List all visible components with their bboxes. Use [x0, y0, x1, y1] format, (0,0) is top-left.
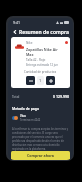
button[interactable]: Comprar ahora: [11, 151, 70, 160]
staticText: Zapatillas Nike Air Max: [26, 47, 65, 57]
staticText: Al confirmar tu compra aceptas los termi…: [12, 127, 69, 151]
staticText: Nike: [26, 41, 33, 45]
staticText: Entrega estimada 12 jun: [26, 63, 58, 67]
staticText: Total: [12, 95, 20, 99]
button[interactable]: Decrease quantity: [26, 76, 35, 85]
staticText: Comprar ahora: [27, 153, 54, 158]
button[interactable]: Remove: [65, 41, 68, 44]
staticText: Resumen de compra: [19, 29, 69, 36]
staticText: 1: [39, 78, 42, 83]
staticText: Visa: [20, 114, 26, 118]
button[interactable]: Back: [11, 28, 19, 36]
staticText: 9:41: [13, 20, 20, 25]
staticText: Termina en 4242: [20, 118, 41, 122]
staticText: Talla 42 - Rojo: [26, 58, 46, 62]
button[interactable]: Increase quantity: [46, 76, 55, 85]
staticText: Cantidad de productos: [24, 70, 57, 74]
staticText: Metodo de pago: [12, 106, 40, 111]
staticText: $ 129.990: [53, 94, 69, 99]
